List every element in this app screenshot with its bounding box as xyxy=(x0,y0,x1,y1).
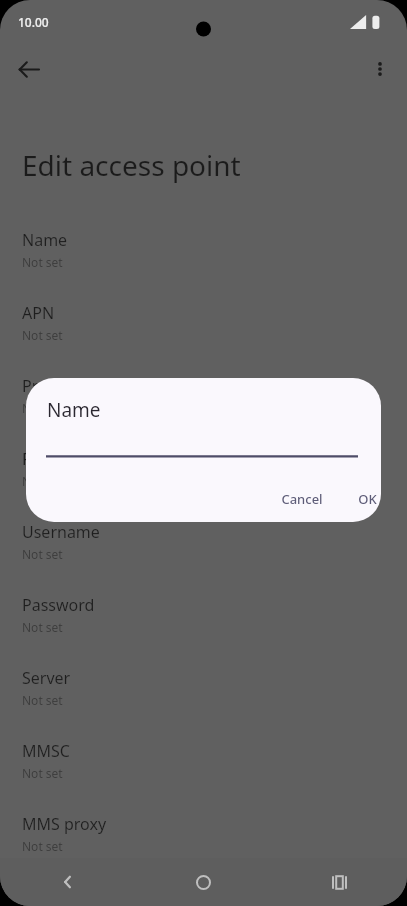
staticText: Port xyxy=(22,448,54,470)
staticText: OK xyxy=(358,490,377,508)
button[interactable]: Name xyxy=(0,228,407,294)
button[interactable]: Back xyxy=(8,49,48,89)
staticText: MMS proxy xyxy=(22,813,107,835)
staticText: Name xyxy=(47,397,101,423)
staticText: Not set xyxy=(22,254,63,270)
button[interactable]: Username xyxy=(0,520,407,586)
button[interactable]: More options xyxy=(360,49,400,89)
button[interactable]: APN xyxy=(0,301,407,367)
staticText: Proxy xyxy=(22,375,64,397)
staticText: Not set xyxy=(22,473,63,489)
staticText: Not set xyxy=(22,765,63,781)
staticText: Password xyxy=(22,594,95,616)
staticText: Not set xyxy=(22,619,63,635)
button[interactable]: Back xyxy=(0,858,135,906)
button[interactable]: Server xyxy=(0,666,407,732)
staticText: Not set xyxy=(22,692,63,708)
button[interactable]: Port xyxy=(0,447,407,513)
staticText: Not set xyxy=(22,400,63,416)
staticText: MMSC xyxy=(22,740,70,762)
staticText: Cancel xyxy=(281,490,323,508)
staticText: Not set xyxy=(22,546,63,562)
button[interactable]: MMSC xyxy=(0,739,407,805)
button[interactable]: Name text field xyxy=(46,455,358,489)
button[interactable]: Proxy xyxy=(0,374,407,440)
staticText: Not set xyxy=(22,327,63,343)
staticText: Username xyxy=(22,521,100,543)
button[interactable]: MMS proxy xyxy=(0,812,407,878)
staticText: 10.00 xyxy=(18,14,49,30)
staticText: Edit access point xyxy=(22,146,241,184)
staticText: Not set xyxy=(22,838,63,854)
button[interactable]: Password xyxy=(0,593,407,659)
button[interactable]: OK xyxy=(346,482,381,516)
button[interactable]: Cancel xyxy=(269,482,335,516)
staticText: Server xyxy=(22,667,71,689)
button[interactable]: MMS port xyxy=(0,885,407,906)
button[interactable]: Home xyxy=(135,858,271,906)
staticText: Name xyxy=(22,229,68,251)
button[interactable]: Recent apps xyxy=(271,858,407,906)
staticText: APN xyxy=(22,302,55,324)
staticText: MMS port xyxy=(22,886,96,906)
